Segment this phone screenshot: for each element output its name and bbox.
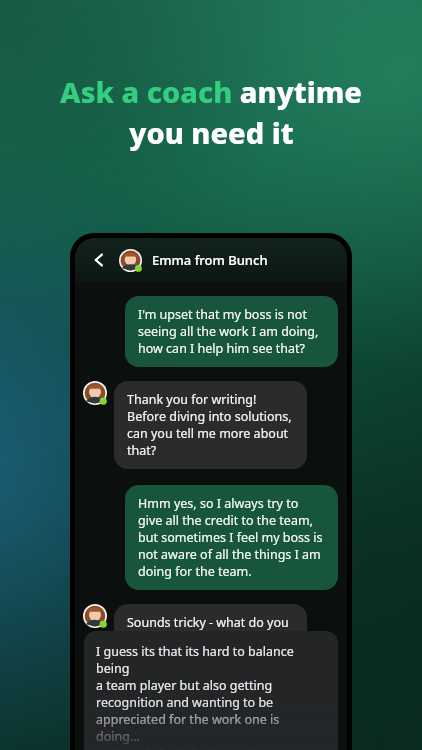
staticText: I guess its that its hard to balance bei… <box>96 643 326 677</box>
staticText: Ask a coach anytime <box>60 72 362 111</box>
staticText: Emma from Bunch <box>152 251 268 269</box>
staticText: recognition and wanting to be <box>96 694 274 711</box>
button[interactable]: I'm upset that my boss is not seeing all… <box>125 296 338 367</box>
staticText: Sounds tricky - what do you think is the… <box>127 614 294 665</box>
staticText: Hmm yes, so I always try to give all the… <box>138 495 325 580</box>
staticText: I'm upset that my boss is not seeing all… <box>138 306 325 357</box>
button[interactable]: Thank you for writing! Before diving int… <box>114 381 307 469</box>
button[interactable]: Sounds tricky - what do you think is the… <box>114 604 307 675</box>
button[interactable]: I guess its that its hard to balance bei… <box>84 631 338 750</box>
button[interactable]: Back <box>87 248 111 272</box>
staticText: appreciated for the work one is doing... <box>96 711 326 745</box>
staticText: a team player but also getting <box>96 677 273 694</box>
button[interactable]: Hmm yes, so I always try to give all the… <box>125 485 338 590</box>
staticText: you need it <box>129 113 294 152</box>
staticText: Thank you for writing! Before diving int… <box>127 391 294 459</box>
